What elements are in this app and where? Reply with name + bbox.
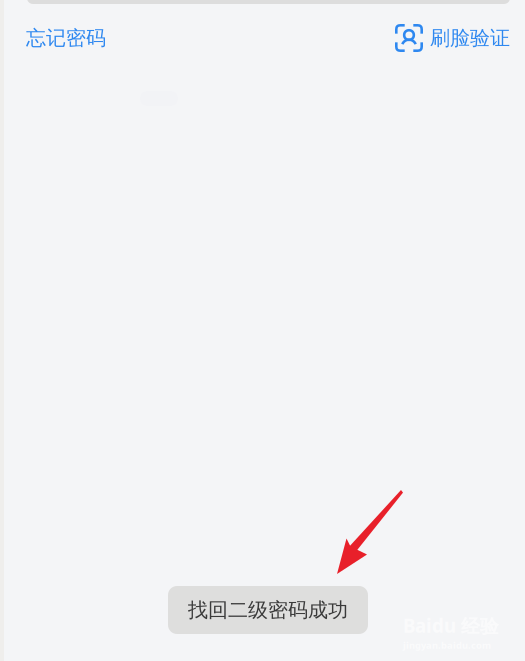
button[interactable]: 忘记密码 — [26, 26, 106, 50]
staticText: 忘记密码 — [26, 26, 106, 50]
staticText: 找回二级密码成功 — [188, 598, 348, 622]
staticText: 刷脸验证 — [430, 26, 510, 50]
button[interactable]: 找回二级密码成功 — [168, 586, 368, 634]
button[interactable]: 刷脸验证 — [395, 24, 510, 52]
